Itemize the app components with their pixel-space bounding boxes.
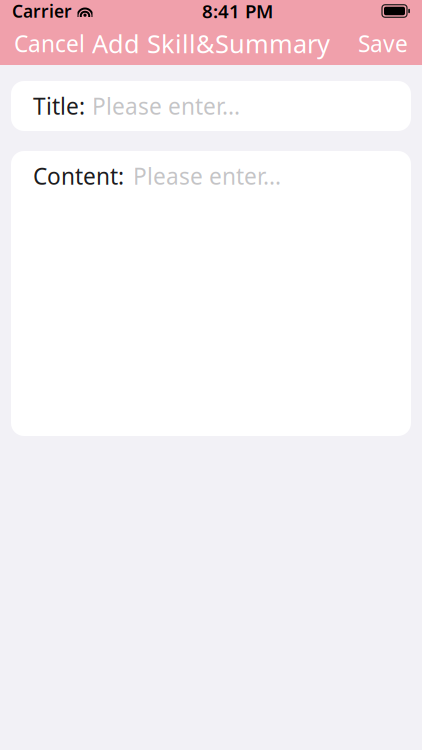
button[interactable]: Cancel bbox=[0, 22, 99, 64]
button[interactable]: Title: bbox=[11, 81, 411, 131]
staticText: Please enter... bbox=[133, 161, 281, 191]
button[interactable]: Content: bbox=[11, 151, 411, 436]
staticText: Save bbox=[358, 28, 408, 58]
staticText: Carrier bbox=[12, 0, 72, 22]
staticText: Cancel bbox=[14, 28, 85, 58]
staticText: 8:41 PM bbox=[202, 0, 273, 23]
staticText: Add Skill&Summary bbox=[92, 27, 330, 60]
staticText: Please enter... bbox=[92, 91, 240, 121]
staticText: Title: bbox=[33, 91, 85, 121]
button[interactable]: Save bbox=[344, 22, 422, 64]
staticText: Content: bbox=[33, 161, 124, 191]
